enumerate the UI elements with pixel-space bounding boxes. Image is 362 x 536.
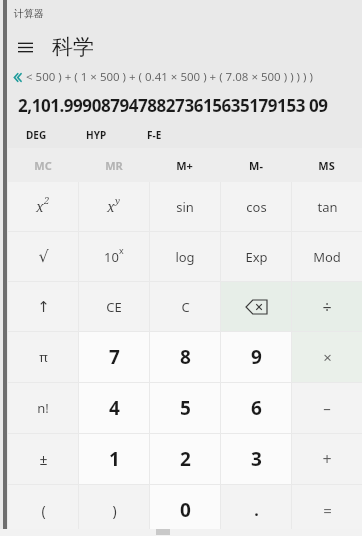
button[interactable]: 退格 bbox=[221, 282, 291, 331]
staticText: ↑ bbox=[37, 298, 50, 315]
button[interactable]: log bbox=[150, 232, 220, 281]
button[interactable]: tan bbox=[292, 182, 362, 231]
staticText: < 500 ) + ( 1 × 500 ) + ( 0.41 × 500 ) +… bbox=[26, 69, 313, 85]
staticText: Exp bbox=[245, 248, 268, 266]
button[interactable]: 7 bbox=[79, 332, 149, 382]
staticText: C bbox=[181, 298, 190, 316]
staticText: √ bbox=[38, 247, 49, 266]
staticText: ÷ bbox=[322, 296, 332, 318]
staticText: 计算器 bbox=[14, 7, 44, 20]
button[interactable]: M+ bbox=[149, 148, 220, 182]
button[interactable]: 6 bbox=[221, 383, 291, 433]
staticText: x bbox=[107, 197, 115, 216]
staticText: 7 bbox=[109, 344, 120, 370]
button[interactable]: cos bbox=[221, 182, 291, 231]
button[interactable]: CE bbox=[79, 282, 149, 331]
staticText: n! bbox=[37, 399, 49, 417]
button[interactable]: ) bbox=[79, 485, 149, 535]
staticText: MC bbox=[34, 158, 52, 173]
staticText: CE bbox=[106, 298, 122, 316]
staticText: 9 bbox=[251, 344, 262, 370]
staticText: 1 bbox=[109, 446, 120, 472]
staticText: 2,101.99908794788273615635179153 09 bbox=[18, 94, 328, 117]
button[interactable]: ( bbox=[8, 485, 78, 535]
button[interactable]: x bbox=[79, 182, 149, 231]
button[interactable]: DEG bbox=[22, 125, 51, 145]
staticText: 2 bbox=[180, 446, 191, 472]
button[interactable]: 3 bbox=[221, 434, 291, 484]
staticText: x bbox=[119, 245, 124, 257]
staticText: 科学 bbox=[52, 34, 94, 60]
button[interactable]: M- bbox=[220, 148, 291, 182]
staticText: sin bbox=[176, 198, 194, 216]
button[interactable]: ↑ bbox=[8, 282, 78, 331]
button[interactable]: √ bbox=[8, 232, 78, 281]
button[interactable]: sin bbox=[150, 182, 220, 231]
button[interactable]: 1 bbox=[79, 434, 149, 484]
staticText: log bbox=[175, 248, 195, 266]
staticText: MS bbox=[318, 158, 335, 173]
button[interactable]: – bbox=[292, 383, 362, 433]
staticText: ( bbox=[41, 501, 46, 520]
button[interactable]: MR bbox=[78, 148, 149, 182]
staticText: MR bbox=[105, 158, 123, 173]
staticText: 10 bbox=[104, 248, 119, 266]
staticText: F-E bbox=[147, 128, 162, 142]
staticText: cos bbox=[246, 198, 267, 216]
staticText: DEG bbox=[26, 128, 47, 142]
staticText: 5 bbox=[180, 395, 191, 421]
staticText: x bbox=[36, 197, 44, 216]
staticText: . bbox=[254, 499, 259, 521]
button[interactable]: 8 bbox=[150, 332, 220, 382]
staticText: – bbox=[323, 398, 331, 418]
button[interactable]: π bbox=[8, 332, 78, 382]
staticText: = bbox=[323, 500, 332, 520]
staticText: 2 bbox=[44, 194, 50, 207]
button[interactable]: 9 bbox=[221, 332, 291, 382]
staticText: Mod bbox=[313, 248, 341, 266]
button[interactable]: ÷ bbox=[292, 282, 362, 331]
button[interactable]: x bbox=[8, 182, 78, 231]
staticText: tan bbox=[317, 198, 338, 216]
staticText: HYP bbox=[86, 128, 107, 142]
staticText: 3 bbox=[251, 446, 262, 472]
button[interactable]: C bbox=[150, 282, 220, 331]
button[interactable]: 2 bbox=[150, 434, 220, 484]
button[interactable]: . bbox=[221, 485, 291, 535]
staticText: M+ bbox=[176, 158, 193, 173]
staticText: y bbox=[115, 194, 121, 207]
button[interactable]: Exp bbox=[221, 232, 291, 281]
button[interactable]: 10 bbox=[79, 232, 149, 281]
staticText: + bbox=[322, 448, 332, 470]
button[interactable]: MS bbox=[291, 148, 362, 182]
button[interactable]: n! bbox=[8, 383, 78, 433]
button[interactable]: × bbox=[292, 332, 362, 382]
staticText: ) bbox=[112, 501, 117, 520]
button[interactable]: 向左滚动 bbox=[12, 68, 26, 86]
button[interactable]: Mod bbox=[292, 232, 362, 281]
staticText: π bbox=[39, 348, 48, 366]
button[interactable]: 0 bbox=[150, 485, 220, 535]
staticText: 6 bbox=[251, 395, 262, 421]
button[interactable]: = bbox=[292, 485, 362, 535]
button[interactable]: 4 bbox=[79, 383, 149, 433]
button[interactable]: HYP bbox=[82, 125, 111, 145]
staticText: 0 bbox=[180, 497, 191, 523]
button[interactable]: ± bbox=[8, 434, 78, 484]
button[interactable]: F-E bbox=[143, 125, 166, 145]
staticText: M- bbox=[249, 158, 263, 173]
button[interactable]: + bbox=[292, 434, 362, 484]
button[interactable]: 打开导航 bbox=[8, 28, 42, 66]
staticText: ± bbox=[39, 450, 48, 469]
button[interactable]: MC bbox=[8, 148, 78, 182]
staticText: × bbox=[323, 347, 332, 367]
staticText: 8 bbox=[180, 344, 191, 370]
button[interactable]: 5 bbox=[150, 383, 220, 433]
staticText: 4 bbox=[109, 395, 120, 421]
